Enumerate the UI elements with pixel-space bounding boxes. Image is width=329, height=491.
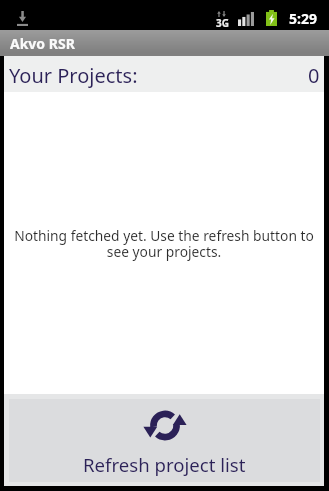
staticText: 0 (308, 62, 320, 89)
staticText: 5:29 (289, 9, 317, 28)
staticText: 3G (216, 16, 229, 30)
staticText: Your Projects: (9, 62, 138, 89)
staticText: Akvo RSR (10, 34, 75, 53)
button[interactable]: Refresh project list (9, 399, 320, 482)
staticText: Nothing fetched yet. Use the refresh but… (14, 226, 314, 261)
staticText: Refresh project list (83, 452, 246, 477)
